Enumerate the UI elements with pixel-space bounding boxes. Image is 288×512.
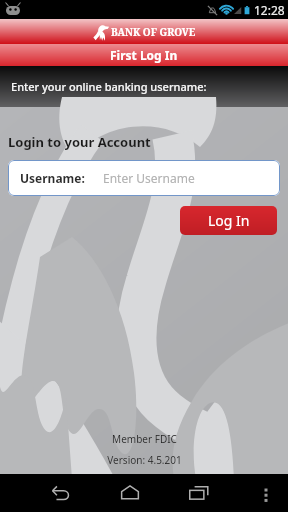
staticText: Username:: [20, 170, 85, 186]
button[interactable]: More options: [252, 479, 280, 507]
button[interactable]: Back: [44, 477, 76, 509]
button[interactable]: Recent apps: [183, 477, 215, 509]
staticText: Version: 4.5.201: [107, 453, 182, 467]
button[interactable]: Home: [114, 477, 146, 509]
staticText: Enter Username: [103, 170, 195, 186]
button[interactable]: Username:: [8, 160, 280, 196]
staticText: Login to your Account: [8, 133, 151, 151]
staticText: 12:28: [254, 2, 285, 18]
staticText: BANK OF GROVE: [111, 25, 196, 39]
staticText: First Log In: [110, 47, 178, 63]
staticText: Member FDIC: [112, 432, 177, 446]
button[interactable]: Log In: [180, 206, 277, 235]
staticText: Log In: [208, 211, 250, 230]
staticText: Enter your online banking username:: [11, 79, 207, 94]
